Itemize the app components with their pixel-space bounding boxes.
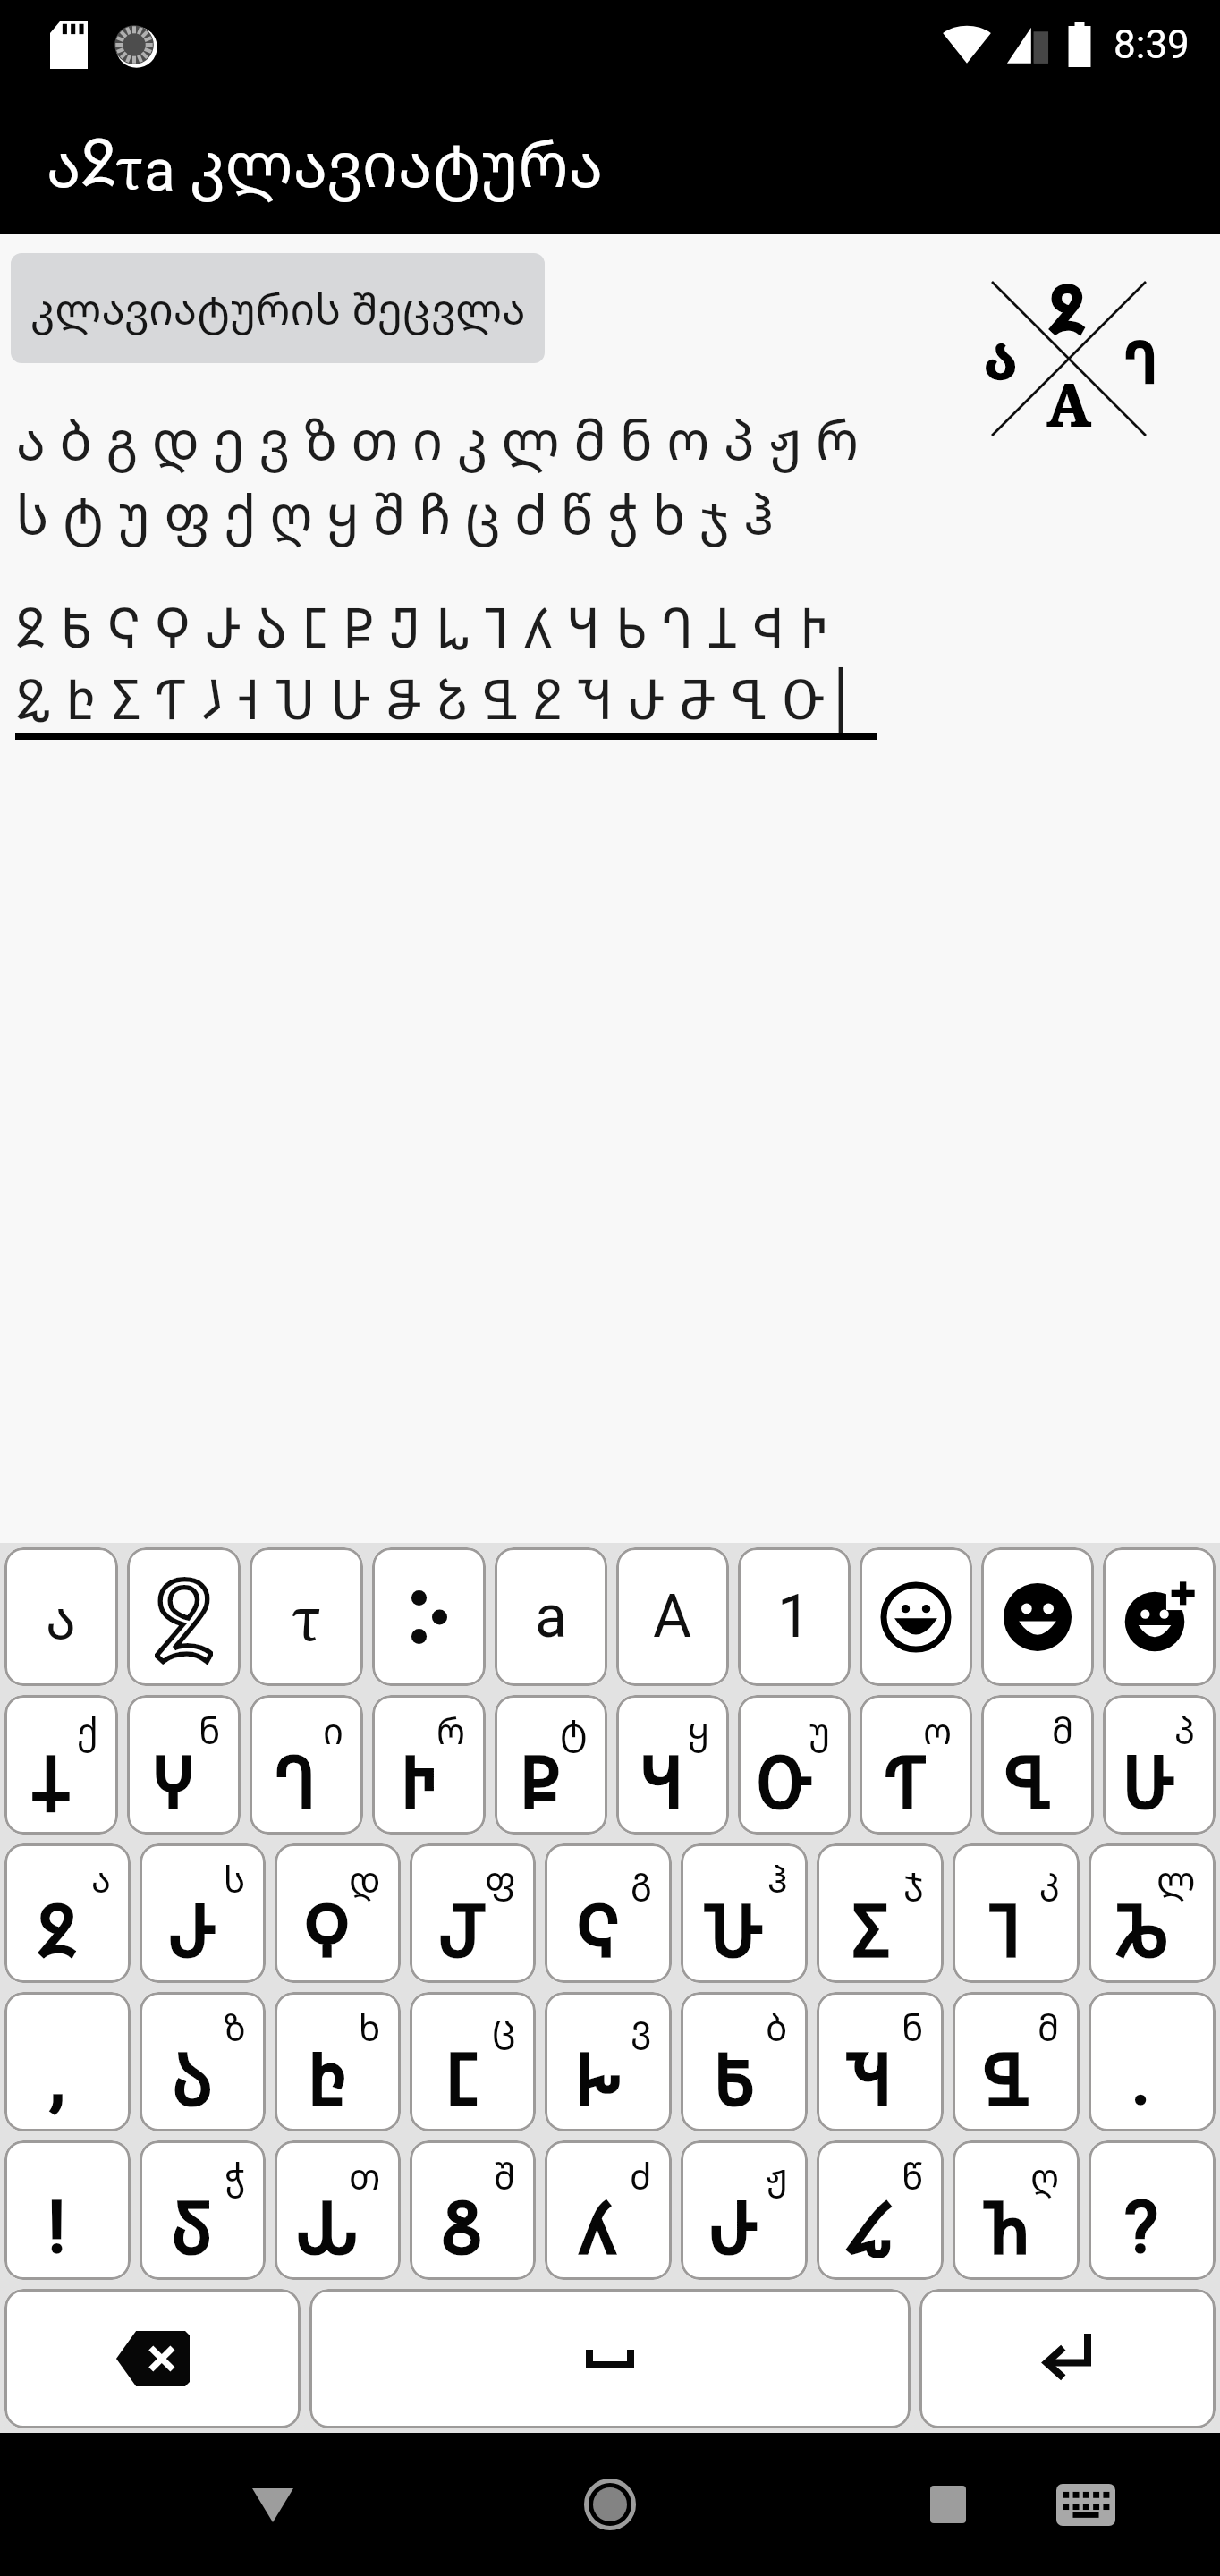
staticText: 𐔲 (577, 1886, 619, 1976)
staticText: 𐕃 (309, 2035, 345, 2124)
staticText: დ (349, 1854, 381, 1902)
button[interactable]: 𐔰ა (4, 1843, 131, 1983)
staticText: a (144, 138, 190, 205)
button[interactable]: 𐔲გ (545, 1843, 672, 1983)
button[interactable]: τ (250, 1547, 363, 1686)
button[interactable]: 𐕒უ (738, 1695, 851, 1835)
staticText: უ (809, 1706, 831, 1754)
staticText: τ (292, 1577, 322, 1657)
staticText: ჟ (766, 2151, 788, 2199)
button[interactable]: Switch keyboard (1019, 2433, 1153, 2576)
button[interactable]: კლავიატურის შეცვლა (11, 253, 545, 363)
button[interactable]: A (616, 1547, 729, 1686)
button[interactable]: 𐕑მ (981, 1695, 1094, 1835)
button[interactable]: 𐕣ქ (4, 1695, 118, 1835)
button[interactable]: ! (4, 2140, 131, 2280)
staticText: ო (923, 1706, 953, 1754)
staticText: 𐔲 (577, 1886, 619, 1976)
staticText: წ (902, 2151, 924, 2199)
staticText: 𐔱 (715, 2035, 753, 2124)
button[interactable]: 𐔳დ (275, 1843, 401, 1983)
staticText: 𐔺 (990, 1886, 1021, 1976)
button[interactable]: 𐔾ი (250, 1695, 363, 1835)
staticText: 𐕛 (576, 2035, 620, 2124)
button[interactable]: Back (192, 2433, 353, 2576)
button[interactable]: ა (4, 1547, 118, 1686)
button[interactable]: 𐕕წ (817, 2140, 944, 2280)
button[interactable]: , (4, 1992, 131, 2131)
button[interactable]: 𐔼ყ (616, 1695, 729, 1835)
button[interactable]: Symbols (372, 1547, 486, 1686)
button[interactable]: Emoticons (981, 1547, 1094, 1686)
staticText: ა (47, 120, 81, 205)
staticText: , (50, 2038, 64, 2122)
button[interactable]: 𐔵ზ (140, 1992, 266, 2131)
staticText: 𐕘 (174, 2183, 211, 2273)
button[interactable]: 𐕏ჟ (681, 2140, 808, 2280)
button[interactable]: 𐕔ფ (410, 1843, 536, 1983)
staticText: A (653, 1582, 692, 1651)
staticText: τ (115, 130, 144, 205)
button[interactable]: 𐕎ნ (817, 1992, 944, 2131)
button[interactable]: ? (1089, 2140, 1216, 2280)
button[interactable]: 𐕢ნ (127, 1695, 241, 1835)
staticText: 𐕎 (847, 2035, 892, 2124)
staticText: 𐔼 (641, 1738, 682, 1827)
button[interactable]: Stickers (1103, 1547, 1216, 1686)
button[interactable]: a (495, 1547, 607, 1686)
button[interactable]: 𐔺კ (953, 1843, 1080, 1983)
button[interactable]: 𐕉პ (1103, 1695, 1216, 1835)
button[interactable]: Emoji (860, 1547, 972, 1686)
staticText: 𐕂 𐕃 𐕄 𐕅 𐕆 𐕇 𐕈 𐕉 𐕊 𐕋 𐕌 𐕍 𐕎 𐕏 𐕐 𐕑 𐕒│ (16, 665, 858, 734)
button[interactable]: Recents (881, 2433, 1015, 2576)
staticText: 𐔰 (155, 1551, 213, 1686)
button[interactable]: 𐔻ძ (545, 2140, 672, 2280)
button[interactable]: 𐕃ხ (275, 1992, 401, 2131)
staticText: 𐕞 (705, 1886, 762, 1976)
button[interactable]: 𐔱ბ (681, 1992, 808, 2131)
staticText: 𐕉 (1123, 1738, 1173, 1827)
staticText: 𐕜 (1117, 1886, 1166, 1976)
staticText: 𐕁 (402, 1738, 436, 1827)
staticText: 𐕌 (984, 2035, 1028, 2124)
button[interactable]: 𐕌მ (953, 1992, 1080, 2131)
button[interactable]: 𐔶ც (410, 1992, 536, 2131)
button[interactable]: Enter (919, 2289, 1216, 2428)
button[interactable]: 1 (738, 1547, 851, 1686)
button[interactable]: Backspace (4, 2289, 301, 2428)
button[interactable]: 𐕚ღ (953, 2140, 1080, 2280)
staticText: 𐔾 (1126, 327, 1156, 397)
staticText: ა (91, 1854, 111, 1902)
button[interactable]: Home (530, 2433, 690, 2576)
button[interactable]: 𐔷ტ (495, 1695, 607, 1835)
staticText: 𐕛 (576, 2035, 620, 2124)
button[interactable]: 𐕝შ (410, 2140, 536, 2280)
staticText: 𐕞 (705, 1886, 762, 1976)
staticText: 𐔵 (174, 2035, 211, 2124)
staticText: ? (1124, 2186, 1158, 2270)
staticText: 𐕘 (174, 2183, 211, 2273)
staticText: 𐕌 (984, 2035, 1028, 2124)
staticText: 𐕕 (848, 2183, 891, 2273)
button[interactable]: 𐕁რ (372, 1695, 486, 1835)
staticText: 𐔾 (1126, 327, 1156, 397)
button[interactable]: 𐕙თ (275, 2140, 401, 2280)
staticText: ! (47, 2186, 66, 2270)
staticText: ფ (485, 1854, 516, 1902)
staticText: 𐕝 (443, 2183, 481, 2273)
button[interactable]: Caucasian Albanian (127, 1547, 241, 1686)
button[interactable]: 𐕜ლ (1089, 1843, 1216, 1983)
button[interactable]: 𐕛ვ (545, 1992, 672, 2131)
button[interactable]: . (1089, 1992, 1216, 2131)
staticText: ტ (560, 1706, 588, 1754)
button[interactable]: Space (309, 2289, 911, 2428)
button[interactable]: 𐕄ჯ (817, 1843, 944, 1983)
button[interactable]: 𐕞ჰ (681, 1843, 808, 1983)
button[interactable]: 𐔴ს (140, 1843, 266, 1983)
staticText: ძ (630, 2151, 652, 2199)
staticText: ხ (359, 2003, 381, 2051)
staticText: 𐕚 (984, 2183, 1028, 2273)
button[interactable]: ა (0, 89, 1220, 234)
button[interactable]: 𐕅ო (860, 1695, 972, 1835)
button[interactable]: 𐕘ჭ (140, 2140, 266, 2280)
